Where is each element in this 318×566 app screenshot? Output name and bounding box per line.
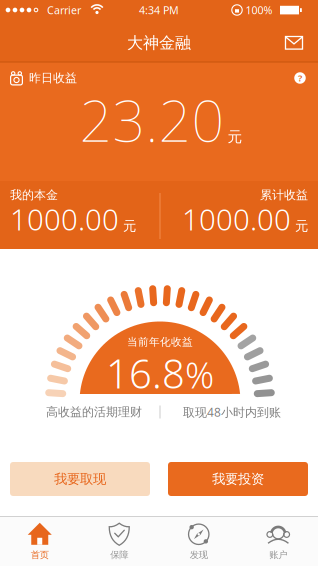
staticText: 1000.00: [10, 199, 119, 238]
button[interactable]: 我要投资: [168, 462, 308, 496]
staticText: 取现48小时内到账: [183, 404, 281, 420]
staticText: ?: [298, 72, 302, 84]
staticText: 1000.00: [182, 199, 291, 238]
button[interactable]: 首页: [0, 516, 79, 566]
button[interactable]: 我要取现: [10, 462, 150, 496]
staticText: 累计收益: [260, 188, 308, 202]
staticText: %: [185, 351, 214, 398]
button[interactable]: 发现: [159, 516, 238, 566]
staticText: 16.8: [106, 346, 185, 399]
staticText: 4:34 PM: [139, 3, 179, 17]
staticText: 高收益的活期理财: [46, 405, 142, 419]
staticText: 我要投资: [212, 471, 264, 487]
staticText: 23.20: [79, 81, 224, 157]
staticText: 昨日收益: [29, 71, 77, 85]
staticText: Carrier: [47, 3, 81, 17]
staticText: 我要取现: [54, 471, 106, 487]
button[interactable]: 账户: [238, 516, 318, 566]
staticText: 我的本金: [10, 188, 58, 202]
staticText: 元: [227, 128, 242, 146]
button[interactable]: 保障: [79, 516, 159, 566]
staticText: 保障: [110, 549, 128, 561]
staticText: 元: [119, 218, 136, 234]
staticText: 大神金融: [127, 33, 191, 53]
staticText: 账户: [269, 549, 287, 561]
staticText: 发现: [190, 549, 208, 561]
button[interactable]: Messages: [282, 31, 306, 55]
staticText: 首页: [31, 549, 49, 561]
staticText: 元: [291, 218, 308, 234]
button[interactable]: Help: [294, 72, 306, 84]
staticText: 当前年化收益: [127, 335, 193, 348]
staticText: 100%: [245, 3, 272, 17]
